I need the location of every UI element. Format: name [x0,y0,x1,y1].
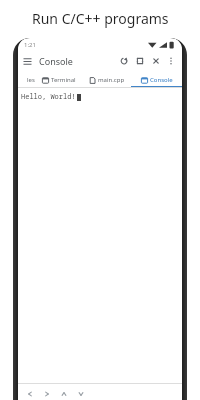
staticText: Hello, World! [21,92,76,102]
staticText: Console [39,55,73,67]
button[interactable]: Fullscreen [132,53,148,69]
button[interactable]: Next [38,385,55,400]
staticText: Terminal [51,76,76,84]
button[interactable]: More options [164,54,178,68]
staticText: les [27,76,35,84]
staticText: Console [150,76,173,84]
button[interactable]: main.cpp [83,71,131,88]
staticText: Run C/C++ programs [32,9,169,28]
staticText: main.cpp [98,76,125,84]
button[interactable]: Terminal [35,71,83,88]
button[interactable]: Menu [18,52,36,70]
button[interactable]: Previous [21,385,38,400]
button[interactable]: Refresh [116,53,132,69]
button[interactable]: Up [55,385,72,400]
button[interactable]: les [18,71,35,88]
button[interactable]: Close [148,53,164,69]
button[interactable]: Console [131,71,182,88]
staticText: 1:21 [24,41,36,49]
button[interactable]: Down [72,385,89,400]
